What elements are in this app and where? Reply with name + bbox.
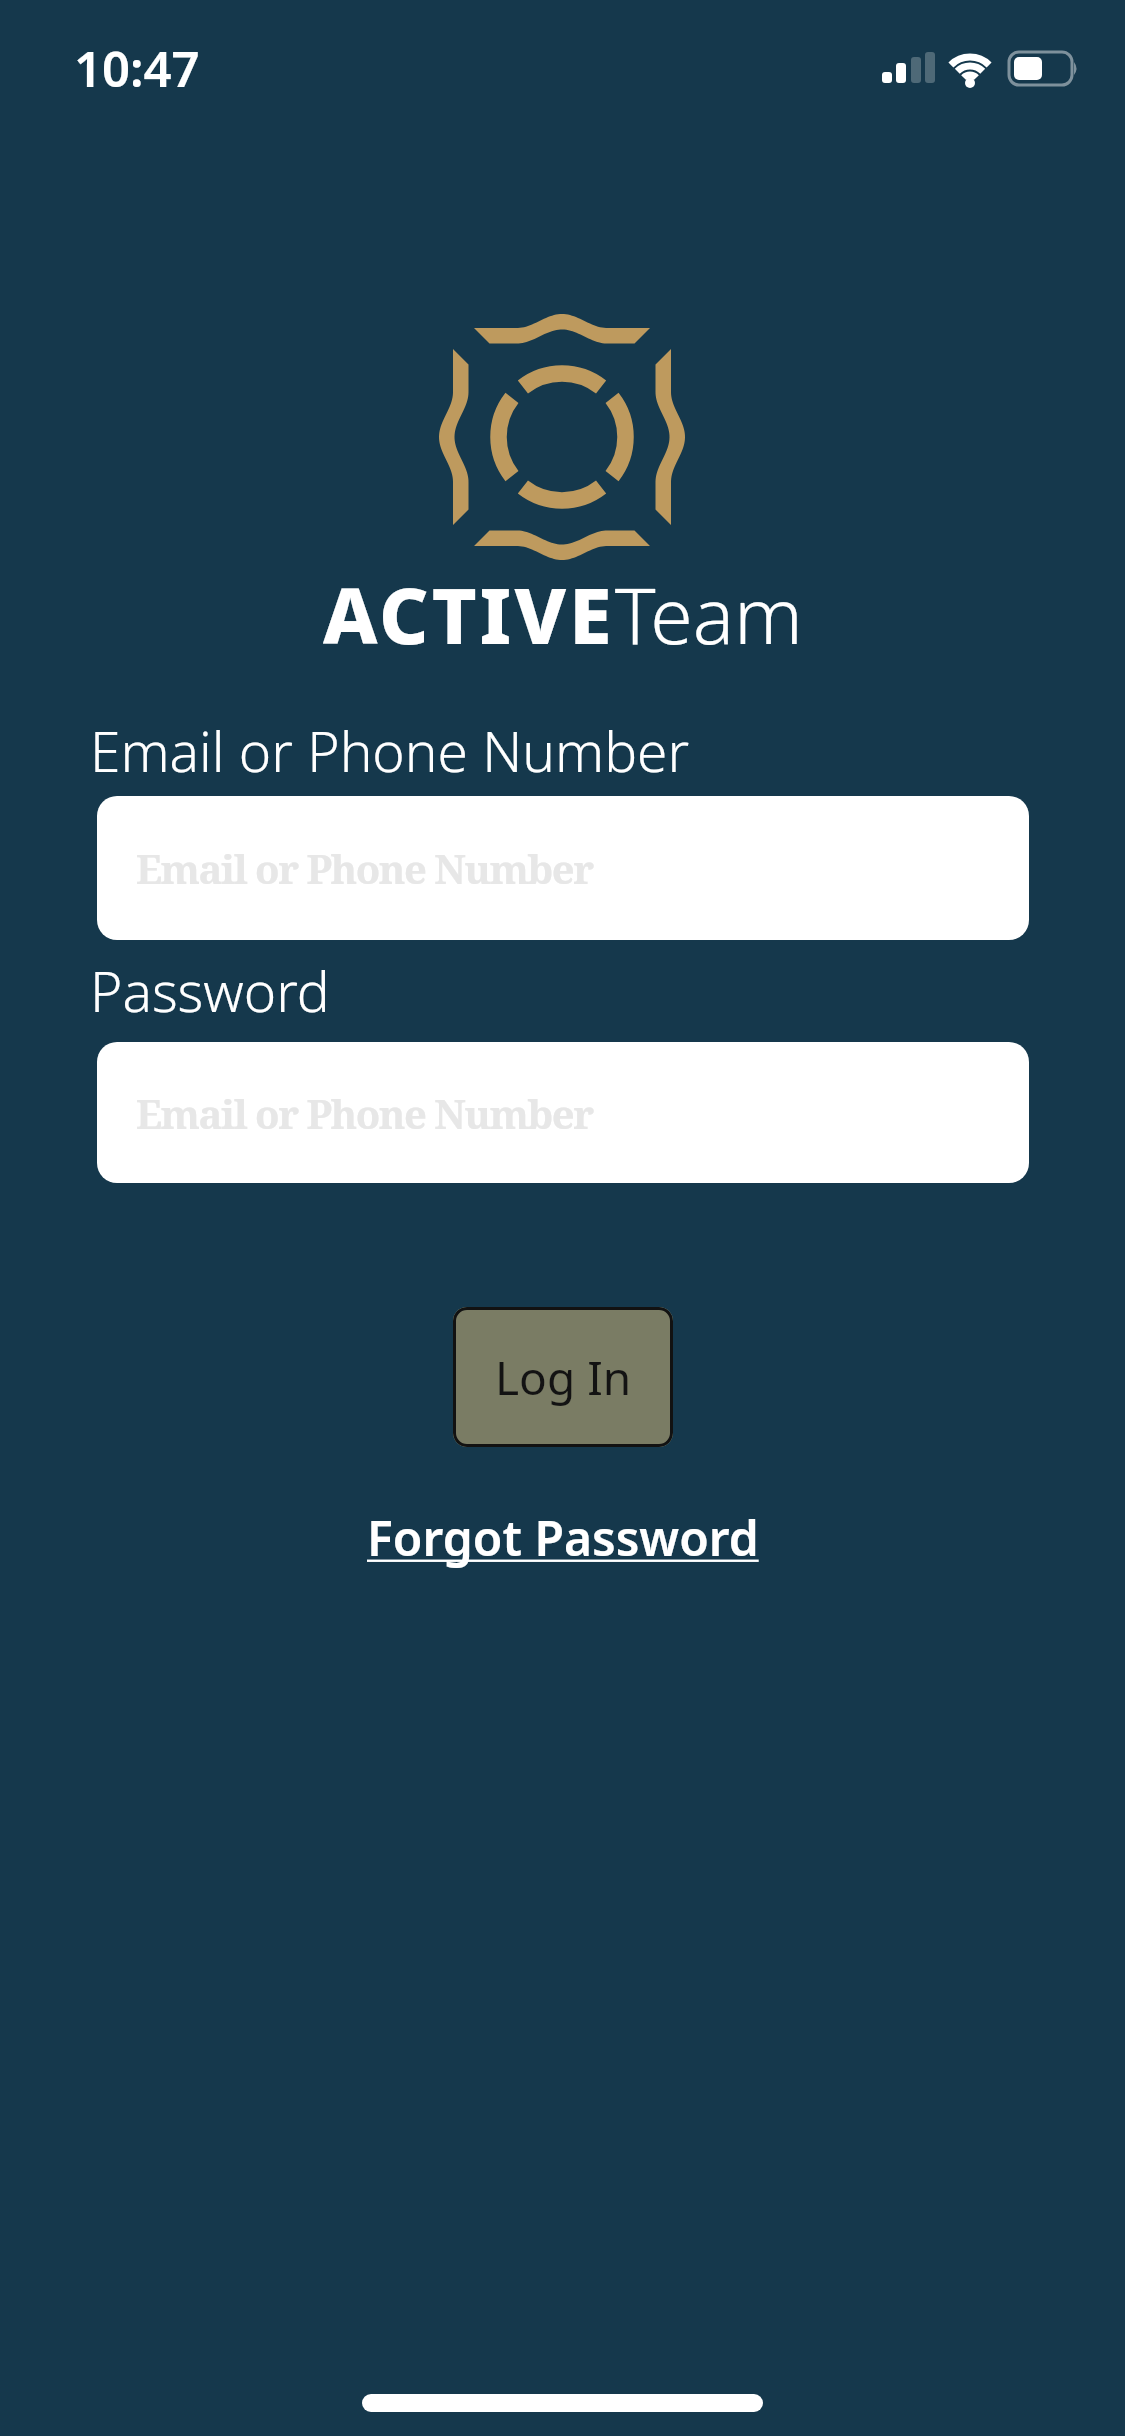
staticText: Forgot Password [367,1505,759,1570]
staticText: Password [90,953,330,1028]
button[interactable]: Log In [453,1307,673,1447]
button[interactable]: Email or Phone Number [97,796,1029,940]
staticText: ACTIVETeam [323,562,803,667]
staticText: Email or Phone Number [90,713,690,788]
staticText: Email or Phone Number [136,1086,593,1140]
staticText: Email or Phone Number [136,841,593,895]
button[interactable]: Email or Phone Number [97,1042,1029,1183]
staticText: Log In [495,1346,632,1409]
staticText: 10:47 [74,35,200,102]
button[interactable]: Forgot Password [367,1505,759,1570]
